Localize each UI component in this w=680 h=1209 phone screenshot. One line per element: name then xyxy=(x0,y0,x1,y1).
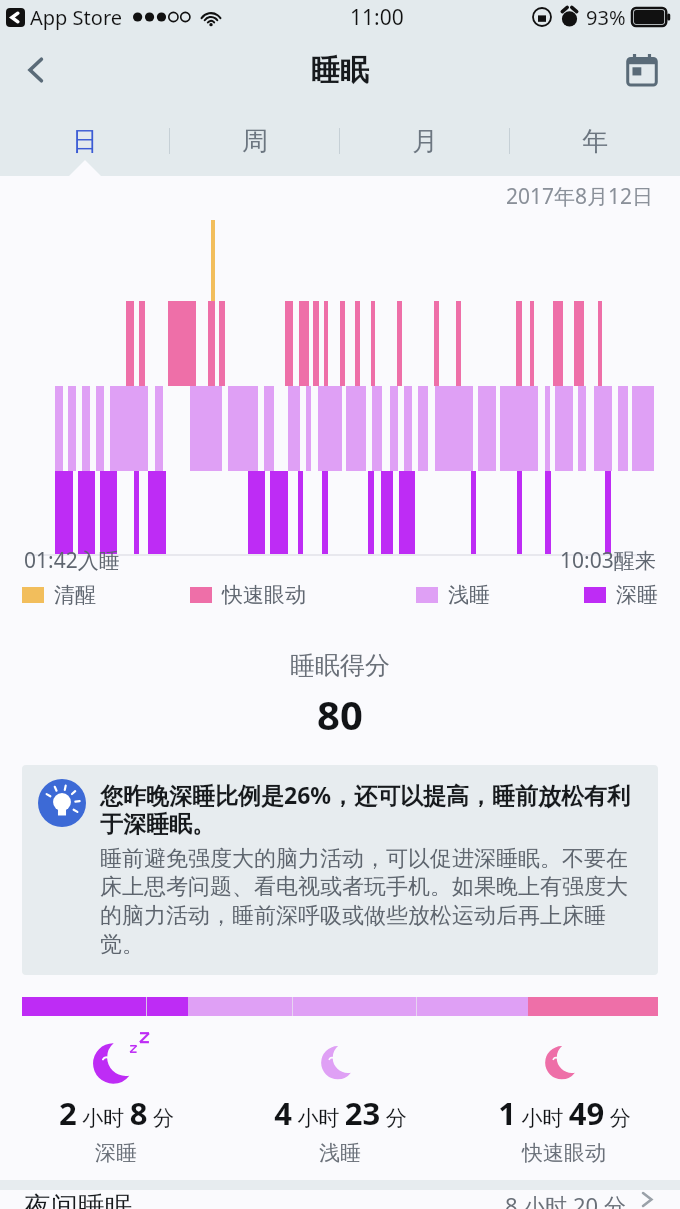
button[interactable]: 1 小时 49 分 xyxy=(452,1030,676,1166)
button[interactable]: 月 xyxy=(340,106,510,176)
button[interactable]: Calendar xyxy=(614,42,670,98)
staticText: 80 xyxy=(317,687,363,741)
staticText: 睡眠 xyxy=(311,52,369,89)
button[interactable]: Back xyxy=(8,42,64,98)
button[interactable]: 2 小时 8 分 xyxy=(4,1030,228,1166)
staticText: 快速眼动 xyxy=(522,1140,606,1166)
button[interactable]: 4 小时 23 分 xyxy=(228,1030,452,1166)
staticText: 您昨晚深睡比例是26%，还可以提高，睡前放松有利于深睡眠。 xyxy=(100,779,642,839)
staticText: 4 小时 23 分 xyxy=(274,1092,407,1134)
staticText: 01:42入睡 xyxy=(24,546,120,575)
staticText: 睡眠得分 xyxy=(290,650,390,681)
staticText: 2 小时 8 分 xyxy=(59,1092,174,1134)
staticText: 10:03醒来 xyxy=(560,546,656,575)
staticText: 浅睡 xyxy=(319,1140,361,1166)
button[interactable]: 日 xyxy=(0,106,170,176)
staticText: 日 xyxy=(72,125,98,158)
staticText: 深睡 xyxy=(95,1140,137,1166)
staticText: 年 xyxy=(582,125,608,158)
staticText: 93% xyxy=(586,4,626,31)
staticText: 夜间睡眠 xyxy=(24,1190,132,1209)
staticText: 2017年8月12日 xyxy=(506,182,654,211)
staticText: 清醒 xyxy=(54,582,96,608)
staticText: 1 小时 49 分 xyxy=(498,1092,631,1134)
staticText: 浅睡 xyxy=(448,582,490,608)
button[interactable]: 年 xyxy=(510,106,680,176)
button[interactable]: 周 xyxy=(170,106,340,176)
staticText: 8 小时 20 分 xyxy=(505,1190,626,1209)
staticText: 快速眼动 xyxy=(222,582,306,608)
button[interactable]: 夜间睡眠 xyxy=(0,1190,680,1209)
staticText: 睡前避免强度大的脑力活动，可以促进深睡眠。不要在床上思考问题、看电视或者玩手机。… xyxy=(100,845,642,959)
staticText: 11:00 xyxy=(350,3,404,32)
staticText: 月 xyxy=(412,125,438,158)
staticText: App Store xyxy=(30,4,123,31)
staticText: 周 xyxy=(242,125,268,158)
button[interactable]: 您昨晚深睡比例是26%，还可以提高，睡前放松有利于深睡眠。 xyxy=(22,765,658,975)
staticText: 深睡 xyxy=(616,582,658,608)
